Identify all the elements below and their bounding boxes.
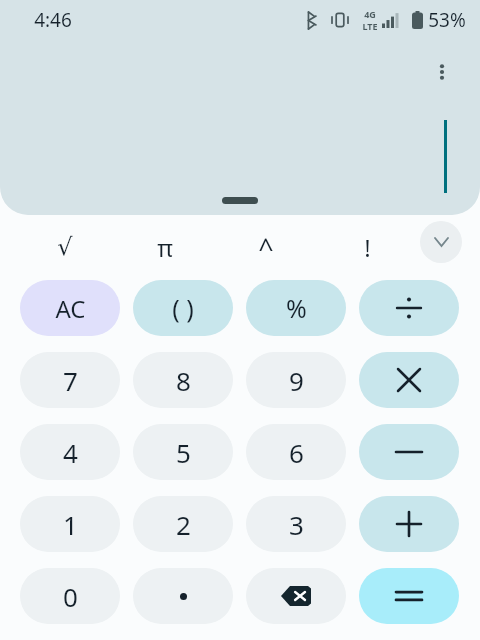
staticText: 2 xyxy=(176,507,191,542)
button[interactable]: 6 xyxy=(246,424,346,480)
button[interactable]: Minus xyxy=(359,424,459,480)
staticText: √ xyxy=(57,233,73,261)
button[interactable]: 5 xyxy=(133,424,233,480)
button[interactable]: 4 xyxy=(20,424,120,480)
button[interactable]: 9 xyxy=(246,352,346,408)
button[interactable]: 3 xyxy=(246,496,346,552)
button[interactable]: 0 xyxy=(20,568,120,624)
staticText: 1 xyxy=(63,507,78,542)
button[interactable]: 1 xyxy=(20,496,120,552)
staticText: 8 xyxy=(176,363,191,398)
button[interactable]: π xyxy=(133,224,197,270)
button[interactable]: % xyxy=(246,280,346,336)
button[interactable]: Backspace xyxy=(246,568,346,624)
button[interactable]: Equals xyxy=(359,568,459,624)
staticText: ! xyxy=(364,231,371,264)
button[interactable]: √ xyxy=(33,224,97,270)
button[interactable]: ( ) xyxy=(133,280,233,336)
staticText: ( ) xyxy=(172,291,194,325)
staticText: AC xyxy=(55,292,86,325)
button[interactable]: Divide xyxy=(359,280,459,336)
staticText: 4 xyxy=(63,435,78,470)
staticText: 6 xyxy=(289,435,304,470)
button[interactable]: Plus xyxy=(359,496,459,552)
staticText: 0 xyxy=(63,579,78,614)
button[interactable]: AC xyxy=(20,280,120,336)
button[interactable]: Expand history xyxy=(222,197,258,204)
button[interactable]: ^ xyxy=(234,224,298,270)
staticText: 5 xyxy=(176,435,191,470)
button[interactable]: Show more functions xyxy=(420,221,462,263)
button[interactable]: Multiply xyxy=(359,352,459,408)
staticText: π xyxy=(157,231,173,264)
staticText: ^ xyxy=(258,229,274,266)
button[interactable]: More options xyxy=(424,54,460,90)
staticText: LTE xyxy=(362,20,378,32)
staticText: 53% xyxy=(428,7,466,33)
staticText: 4G xyxy=(364,8,376,20)
staticText: 3 xyxy=(289,507,304,542)
button[interactable]: 7 xyxy=(20,352,120,408)
staticText: % xyxy=(286,291,307,325)
button[interactable]: 2 xyxy=(133,496,233,552)
staticText: 4:46 xyxy=(34,7,72,33)
button[interactable]: ! xyxy=(335,224,399,270)
button[interactable]: Decimal point xyxy=(133,568,233,624)
staticText: 9 xyxy=(289,363,304,398)
button[interactable]: 8 xyxy=(133,352,233,408)
staticText: 7 xyxy=(63,363,78,398)
